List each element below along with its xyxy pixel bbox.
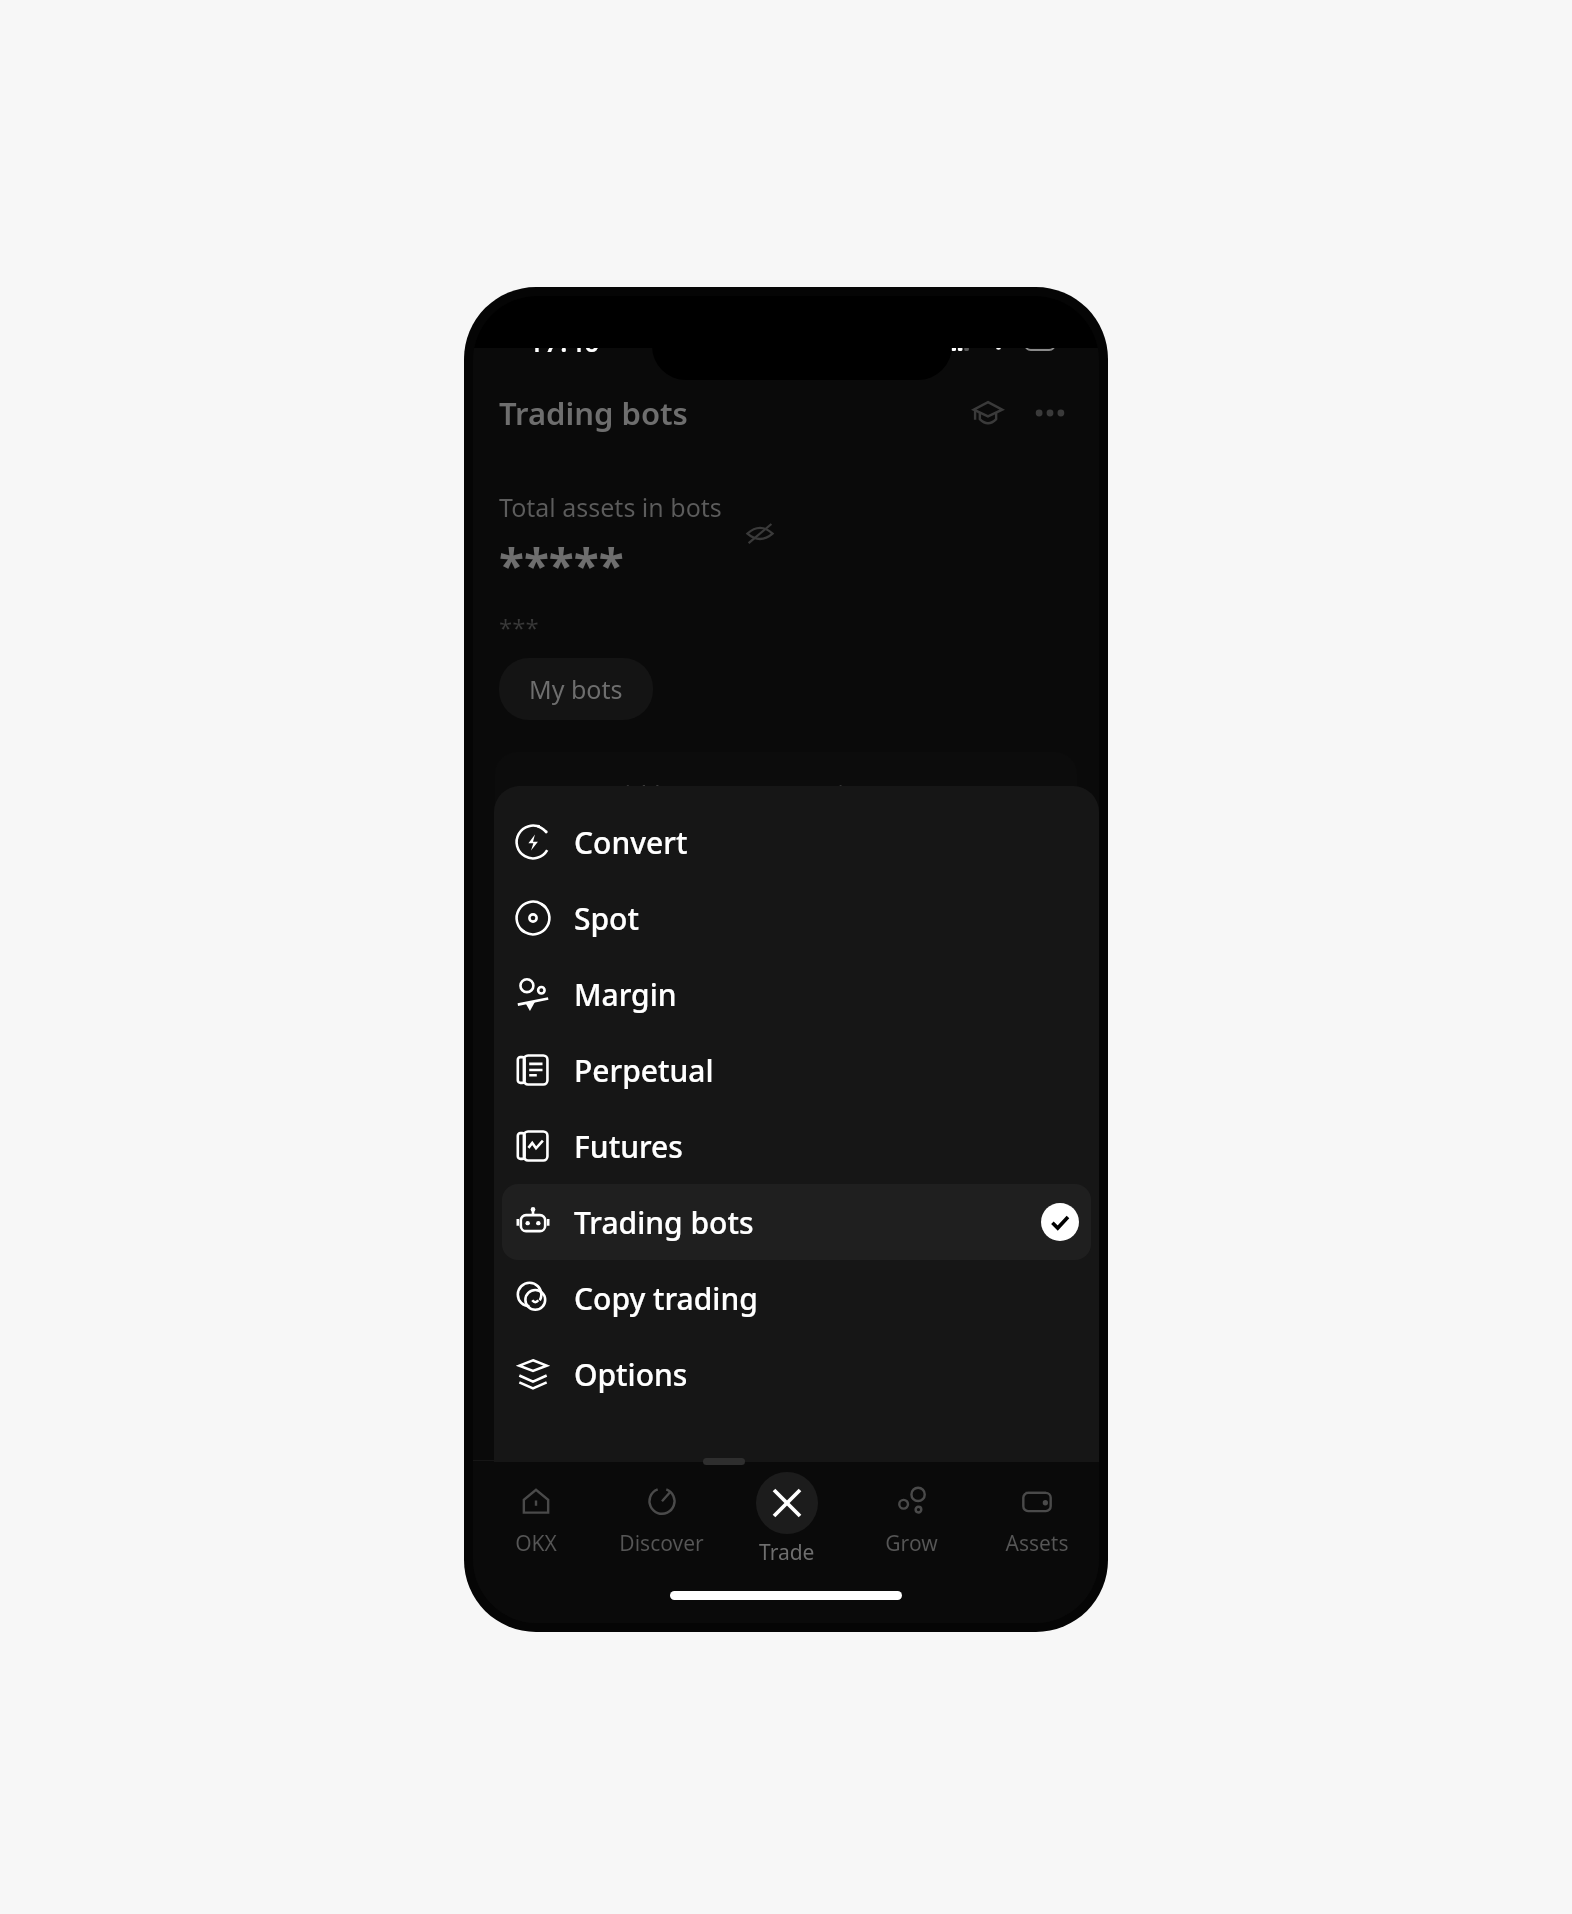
staticText: Trading bots [574, 1202, 754, 1243]
button[interactable]: Learn [965, 390, 1011, 436]
button[interactable]: Perpetual [502, 1032, 1091, 1108]
staticText: *** [499, 611, 539, 644]
staticText: Trading bots [499, 392, 688, 434]
button[interactable]: Margin [502, 956, 1091, 1032]
staticText: My bots [529, 672, 623, 706]
button[interactable]: Futures [502, 1108, 1091, 1184]
staticText: Perpetual [574, 1050, 714, 1091]
button[interactable]: Discover [599, 1461, 724, 1579]
staticText: Options [574, 1354, 688, 1395]
staticText: Discover [619, 1529, 704, 1558]
staticText: OKX [515, 1529, 557, 1558]
staticText: 17:40 [528, 322, 600, 360]
button[interactable]: Options [502, 1336, 1091, 1412]
button[interactable]: Convert [502, 804, 1091, 880]
staticText: Convert [574, 822, 688, 863]
staticText: Grow [885, 1529, 938, 1558]
button[interactable]: Assets [974, 1461, 1099, 1579]
button[interactable]: Trading bots [502, 1184, 1091, 1260]
staticText: ***** [499, 534, 624, 597]
staticText: Copy trading [574, 1278, 758, 1319]
staticText: Create grid bots, empowering you to [511, 776, 960, 811]
staticText: Spot [574, 898, 639, 939]
staticText: Trade [759, 1538, 815, 1567]
staticText: Margin [574, 974, 677, 1015]
button[interactable]: Close trade menu [724, 1461, 849, 1579]
button[interactable]: Grow [849, 1461, 974, 1579]
button[interactable]: More options [1027, 390, 1073, 436]
staticText: Assets [1005, 1529, 1069, 1558]
staticText: Futures [574, 1126, 683, 1167]
button[interactable]: My bots [499, 658, 653, 720]
button[interactable]: Spot [502, 880, 1091, 956]
button[interactable]: OKX [473, 1461, 599, 1579]
button[interactable]: Copy trading [502, 1260, 1091, 1336]
staticText: Total assets in bots [499, 490, 722, 524]
